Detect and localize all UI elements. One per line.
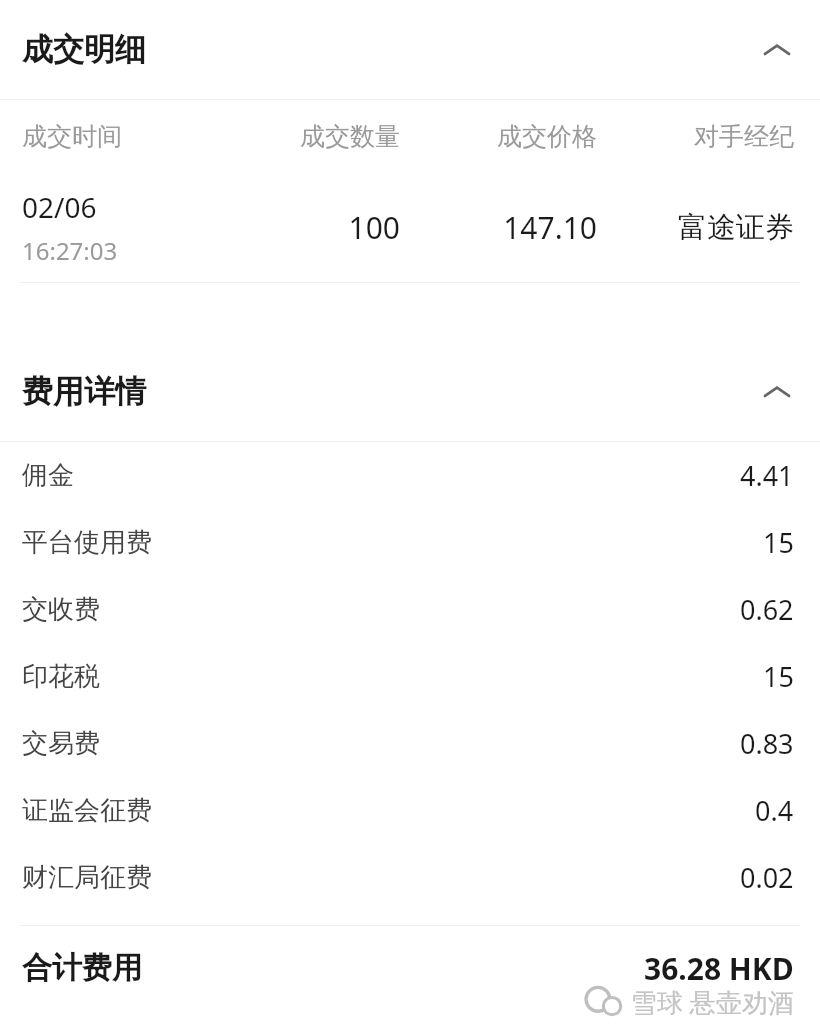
staticText: 富途证券	[597, 209, 794, 246]
staticText: 佣金	[22, 459, 74, 492]
button[interactable]: 佣金	[0, 442, 820, 509]
staticText: 100	[200, 207, 400, 248]
staticText: 费用详情	[22, 372, 146, 411]
staticText: 财汇局征费	[22, 861, 152, 894]
button[interactable]: 证监会征费	[0, 777, 820, 844]
staticText: 成交价格	[400, 121, 597, 152]
staticText: 雪球 悬壶劝酒	[631, 984, 794, 1020]
staticText: 平台使用费	[22, 526, 152, 559]
staticText: 15	[763, 524, 794, 561]
button[interactable]: 02/06	[0, 172, 820, 282]
button[interactable]: 财汇局征费	[0, 844, 820, 911]
button[interactable]: 成交明细	[0, 0, 820, 99]
staticText: 36.28 HKD	[644, 948, 794, 989]
staticText: 对手经纪	[597, 121, 794, 152]
staticText: 成交明细	[22, 30, 146, 69]
staticText: 0.83	[740, 725, 794, 762]
button[interactable]: 交易费	[0, 710, 820, 777]
staticText: 15	[763, 658, 794, 695]
other: Collapse 费用详情	[760, 375, 794, 409]
button[interactable]: 印花税	[0, 643, 820, 710]
staticText: 合计费用	[22, 949, 142, 987]
staticText: 证监会征费	[22, 794, 152, 827]
staticText: 02/06	[22, 188, 97, 226]
staticText: 成交时间	[22, 121, 122, 152]
staticText: 成交数量	[200, 121, 400, 152]
staticText: 0.4	[755, 792, 794, 829]
button[interactable]: 平台使用费	[0, 509, 820, 576]
staticText: 147.10	[400, 207, 597, 248]
staticText: 4.41	[740, 457, 794, 494]
staticText: 交易费	[22, 727, 100, 760]
button[interactable]: 费用详情	[0, 342, 820, 441]
staticText: 0.02	[740, 859, 794, 896]
staticText: 交收费	[22, 593, 100, 626]
other: Collapse 成交明细	[760, 33, 794, 67]
staticText: 印花税	[22, 660, 100, 693]
button[interactable]: 交收费	[0, 576, 820, 643]
staticText: 16:27:03	[22, 234, 118, 267]
staticText: 0.62	[740, 591, 794, 628]
